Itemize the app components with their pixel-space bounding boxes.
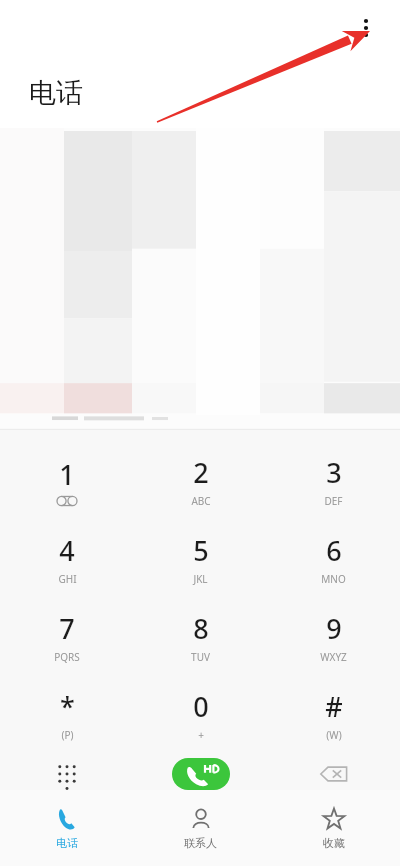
button[interactable]: 电话: [0, 790, 134, 866]
staticText: 电话: [56, 836, 78, 850]
staticText: 1: [59, 456, 75, 493]
staticText: +: [198, 728, 204, 742]
button[interactable]: 收藏: [267, 790, 400, 866]
staticText: 联系人: [184, 836, 217, 850]
button[interactable]: 7: [0, 604, 134, 670]
staticText: 7: [59, 610, 75, 647]
staticText: 3: [326, 454, 342, 491]
staticText: DEF: [324, 494, 343, 508]
staticText: TUV: [191, 650, 210, 664]
staticText: 6: [326, 532, 342, 569]
button[interactable]: Call HD: [172, 758, 230, 790]
button[interactable]: More options: [346, 8, 386, 48]
staticText: 4: [59, 532, 75, 569]
staticText: JKL: [193, 572, 208, 586]
button[interactable]: 4: [0, 526, 134, 592]
staticText: GHI: [58, 572, 77, 586]
button[interactable]: 0: [134, 682, 267, 748]
button[interactable]: Dialpad: [0, 758, 134, 790]
staticText: *: [60, 688, 75, 725]
staticText: MNO: [321, 572, 346, 586]
staticText: 5: [193, 532, 209, 569]
staticText: PQRS: [54, 650, 80, 664]
staticText: (P): [61, 728, 74, 742]
staticText: ABC: [191, 494, 211, 508]
button[interactable]: 9: [267, 604, 400, 670]
button[interactable]: *: [0, 682, 134, 748]
button[interactable]: 联系人: [134, 790, 267, 866]
staticText: 收藏: [323, 836, 345, 850]
button[interactable]: 6: [267, 526, 400, 592]
button[interactable]: 2: [134, 448, 267, 514]
button[interactable]: 1: [0, 448, 134, 514]
button[interactable]: Delete: [267, 758, 400, 790]
button[interactable]: 3: [267, 448, 400, 514]
staticText: 电话: [29, 76, 83, 110]
button[interactable]: 8: [134, 604, 267, 670]
button[interactable]: 5: [134, 526, 267, 592]
staticText: 9: [326, 610, 342, 647]
staticText: WXYZ: [320, 650, 347, 664]
staticText: 0: [193, 688, 209, 725]
staticText: #: [325, 688, 343, 725]
staticText: (W): [326, 728, 342, 742]
button[interactable]: #: [267, 682, 400, 748]
staticText: 8: [193, 610, 209, 647]
staticText: 2: [193, 454, 209, 491]
